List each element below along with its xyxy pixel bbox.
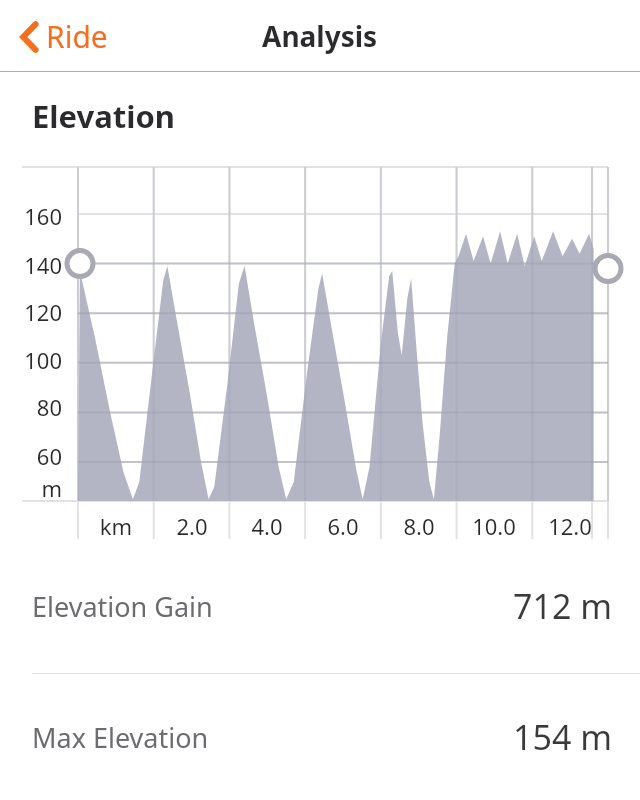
- staticText: Elevation: [32, 95, 176, 137]
- staticText: Elevation Gain: [32, 588, 213, 625]
- button[interactable]: Ride: [14, 10, 114, 63]
- staticText: Analysis: [262, 17, 378, 55]
- staticText: 10.0: [454, 511, 534, 541]
- staticText: 80: [0, 392, 62, 422]
- staticText: 100: [0, 345, 62, 375]
- staticText: 160: [0, 201, 62, 231]
- staticText: 140: [0, 250, 62, 280]
- staticText: 8.0: [379, 511, 459, 541]
- staticText: m: [0, 473, 62, 503]
- button[interactable]: Max Elevation: [0, 674, 640, 800]
- staticText: 712 m: [513, 583, 612, 629]
- staticText: 154 m: [513, 714, 612, 760]
- staticText: 120: [0, 297, 62, 327]
- staticText: Ride: [46, 16, 108, 57]
- staticText: 4.0: [227, 511, 307, 541]
- button[interactable]: Elevation Gain: [0, 539, 640, 673]
- staticText: Max Elevation: [32, 719, 209, 756]
- staticText: 6.0: [303, 511, 383, 541]
- staticText: km: [76, 511, 156, 541]
- staticText: 12.0: [530, 511, 610, 541]
- staticText: 2.0: [152, 511, 232, 541]
- staticText: 60: [0, 441, 62, 471]
